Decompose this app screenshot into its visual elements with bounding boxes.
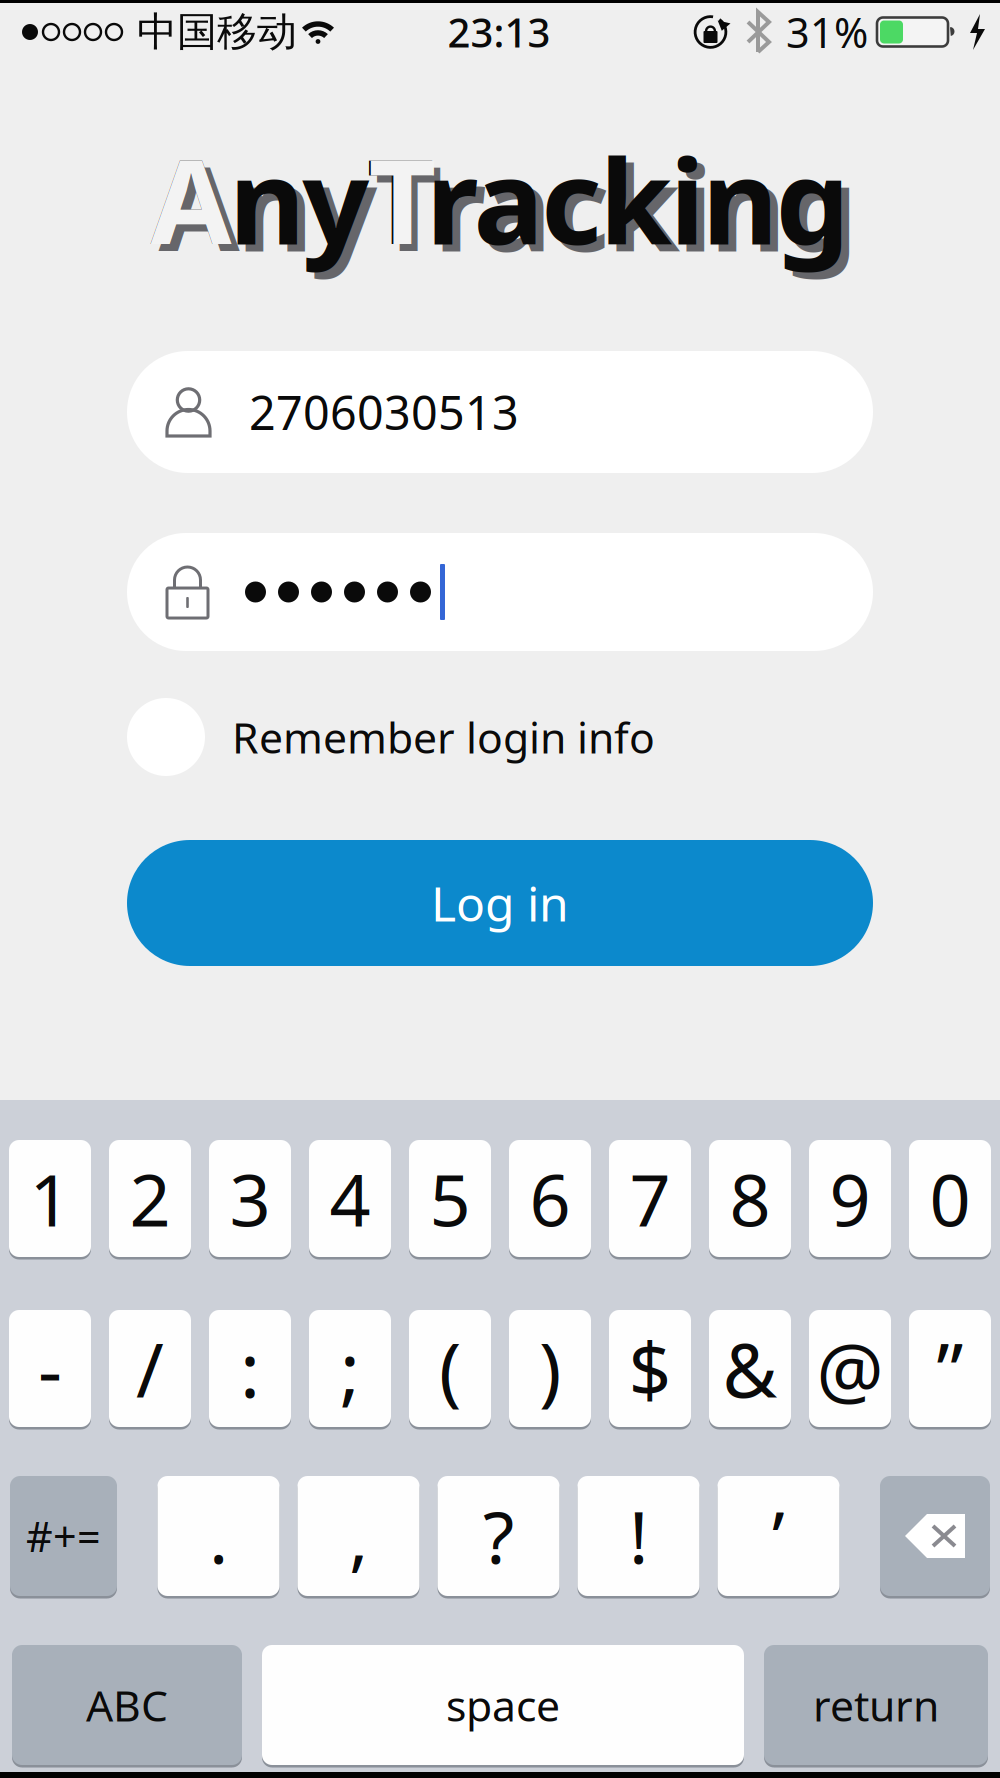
button[interactable]: ” xyxy=(909,1307,991,1429)
staticText: 中国移动 xyxy=(137,7,297,56)
staticText: space xyxy=(446,1677,560,1733)
button[interactable]: 8 xyxy=(709,1137,791,1259)
button[interactable]: 0 xyxy=(909,1137,991,1259)
button[interactable]: Delete xyxy=(880,1473,990,1598)
button[interactable]: 4 xyxy=(309,1137,391,1259)
staticText: 8 xyxy=(729,1151,770,1246)
staticText: 31% xyxy=(786,5,868,59)
staticText: 3 xyxy=(229,1151,270,1246)
staticText: 2706030513 xyxy=(249,381,519,443)
staticText: , xyxy=(349,1488,368,1584)
button[interactable]: ( xyxy=(409,1307,491,1429)
staticText: $ xyxy=(628,1319,671,1418)
button[interactable]: 9 xyxy=(809,1137,891,1259)
staticText: ; xyxy=(340,1319,360,1418)
staticText: 5 xyxy=(429,1151,470,1246)
button[interactable]: ? xyxy=(437,1473,559,1598)
staticText: : xyxy=(240,1319,260,1418)
button[interactable]: return xyxy=(764,1642,988,1767)
staticText: ( xyxy=(439,1319,461,1418)
button[interactable]: : xyxy=(209,1307,291,1429)
staticText: 23:13 xyxy=(447,5,550,58)
staticText: 7 xyxy=(629,1151,670,1246)
staticText: ” xyxy=(936,1319,963,1418)
staticText: 2 xyxy=(129,1151,170,1246)
staticText: return xyxy=(813,1677,939,1733)
button[interactable]: 3 xyxy=(209,1137,291,1259)
staticText: 4 xyxy=(329,1151,370,1246)
button[interactable]: 5 xyxy=(409,1137,491,1259)
staticText: ’ xyxy=(772,1488,785,1584)
button[interactable]: ’ xyxy=(717,1473,839,1598)
staticText: Remember login info xyxy=(232,709,655,765)
staticText: 0 xyxy=(929,1151,970,1246)
staticText: AnyTracking xyxy=(158,128,857,284)
button[interactable]: Remember login info xyxy=(127,698,873,776)
staticText: & xyxy=(722,1319,777,1418)
button[interactable]: #+= xyxy=(10,1473,117,1598)
staticText: 1 xyxy=(29,1151,70,1246)
staticText: Log in xyxy=(431,871,569,935)
staticText: - xyxy=(38,1319,62,1418)
button[interactable]: 7 xyxy=(609,1137,691,1259)
staticText: . xyxy=(209,1488,228,1584)
button[interactable]: 2706030513 xyxy=(127,351,873,473)
staticText: @ xyxy=(816,1319,883,1418)
button[interactable]: ABC xyxy=(12,1642,242,1767)
staticText: 9 xyxy=(829,1151,870,1246)
staticText: ABC xyxy=(86,1677,168,1733)
staticText: 6 xyxy=(529,1151,570,1246)
button[interactable]: - xyxy=(9,1307,91,1429)
button[interactable]: . xyxy=(157,1473,279,1598)
staticText: A xyxy=(150,121,231,277)
staticText: ) xyxy=(539,1319,561,1418)
button[interactable]: @ xyxy=(809,1307,891,1429)
staticText: AnyTracking xyxy=(150,121,849,277)
button[interactable]: Log in xyxy=(127,840,873,966)
button[interactable]: $ xyxy=(609,1307,691,1429)
button[interactable] xyxy=(127,533,873,651)
button[interactable]: , xyxy=(297,1473,419,1598)
button[interactable]: ! xyxy=(577,1473,699,1598)
staticText: ! xyxy=(629,1488,648,1584)
staticText: #+= xyxy=(26,1509,101,1563)
button[interactable]: 6 xyxy=(509,1137,591,1259)
staticText: T xyxy=(368,121,436,277)
button[interactable]: 1 xyxy=(9,1137,91,1259)
button[interactable]: & xyxy=(709,1307,791,1429)
button[interactable]: 2 xyxy=(109,1137,191,1259)
button[interactable]: ) xyxy=(509,1307,591,1429)
button[interactable]: / xyxy=(109,1307,191,1429)
staticText: / xyxy=(136,1319,164,1418)
button[interactable]: space xyxy=(262,1642,744,1767)
button[interactable]: ; xyxy=(309,1307,391,1429)
staticText: ? xyxy=(483,1488,514,1584)
